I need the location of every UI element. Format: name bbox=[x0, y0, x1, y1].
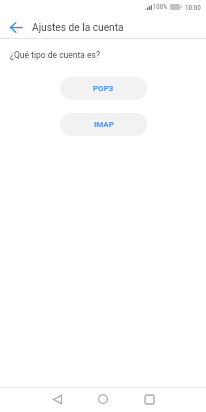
staticText: 100% bbox=[153, 3, 168, 11]
button[interactable]: Home bbox=[92, 388, 114, 410]
button[interactable]: Back bbox=[46, 388, 68, 410]
button[interactable]: Recent apps bbox=[138, 388, 160, 410]
staticText: 10:00 bbox=[185, 3, 201, 11]
staticText: Ajustes de la cuenta bbox=[32, 22, 124, 34]
staticText: IMAP bbox=[94, 120, 114, 129]
staticText: ¿Qué tipo de cuenta es? bbox=[10, 50, 100, 60]
button[interactable]: POP3 bbox=[60, 77, 147, 100]
button[interactable]: Back bbox=[5, 16, 27, 38]
button[interactable]: IMAP bbox=[60, 113, 147, 136]
staticText: POP3 bbox=[93, 84, 114, 93]
